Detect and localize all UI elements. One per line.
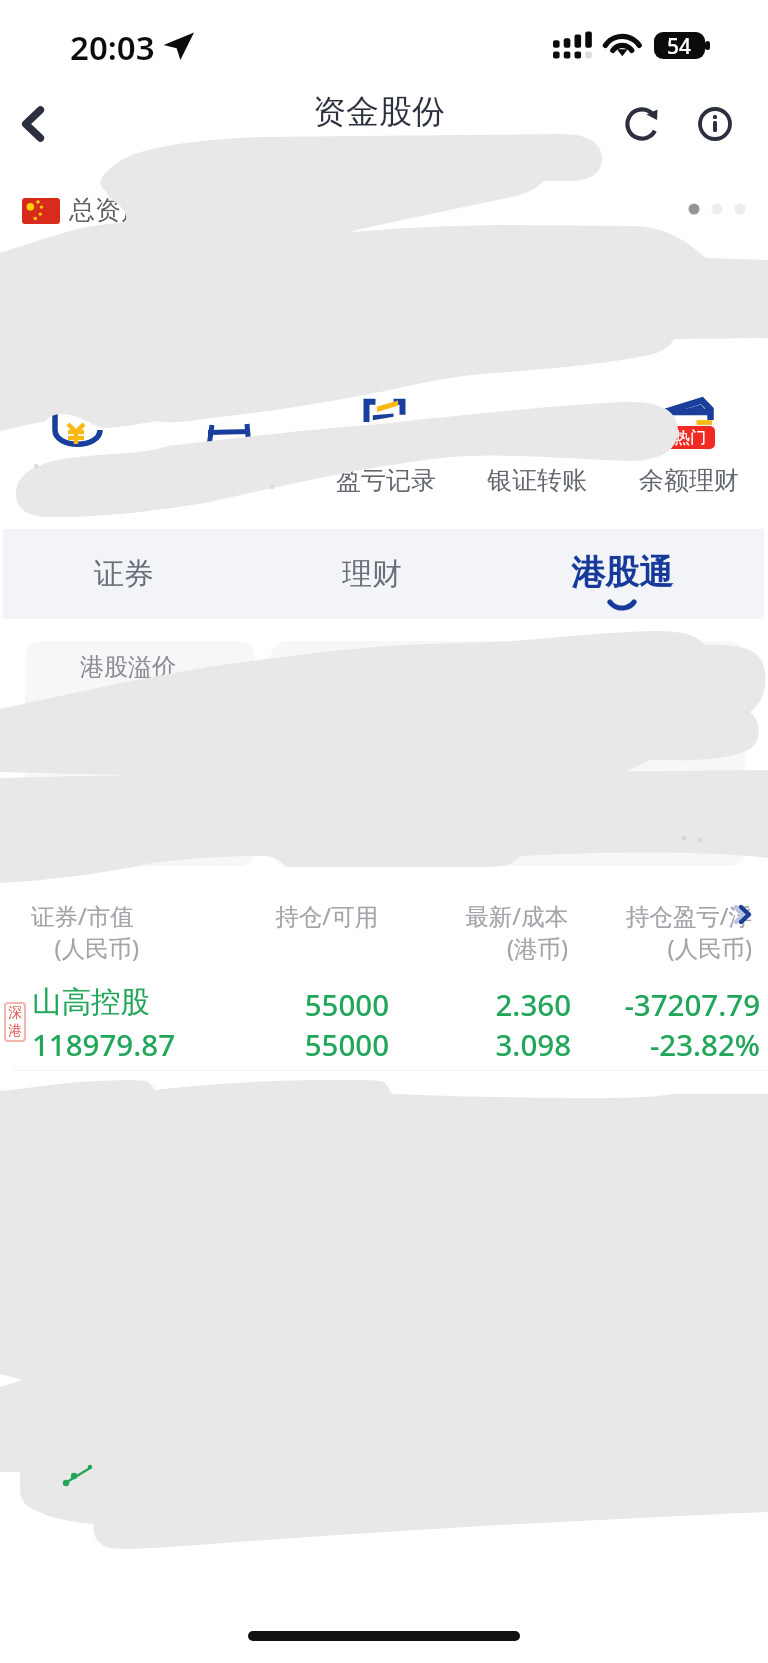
staticText: 港 bbox=[8, 1022, 22, 1040]
staticText: 20:03 bbox=[70, 25, 155, 70]
button[interactable]: Back bbox=[6, 96, 62, 152]
staticText: 热门 bbox=[674, 428, 706, 448]
staticText: 最新/成本 bbox=[0, 900, 568, 932]
staticText: 54 bbox=[667, 32, 692, 59]
staticText: 深 bbox=[8, 1004, 22, 1022]
staticText: 证券 bbox=[94, 555, 154, 593]
staticText: 港股通 bbox=[571, 551, 673, 594]
button[interactable]: 银证转账 bbox=[487, 465, 587, 496]
staticText: 总资产 bbox=[69, 194, 147, 227]
staticText: (人民币) bbox=[0, 932, 752, 964]
staticText: 余额理财 bbox=[639, 465, 739, 496]
staticText: (人民币) bbox=[0, 932, 139, 964]
staticText: 持仓/可用 bbox=[0, 900, 378, 932]
staticText: 持仓盈亏/浮 bbox=[0, 900, 752, 932]
staticText: 理财 bbox=[342, 555, 402, 593]
staticText: 银证转账 bbox=[487, 465, 587, 496]
staticText: 118979.87 bbox=[32, 1024, 176, 1064]
button[interactable]: 理财 bbox=[276, 529, 468, 619]
staticText: 3.098 bbox=[0, 1024, 571, 1064]
button[interactable]: Refresh bbox=[616, 98, 668, 150]
staticText: 55000 bbox=[0, 984, 389, 1024]
staticText: 盈亏记录 bbox=[336, 465, 436, 496]
staticText: 证券/市值 bbox=[31, 900, 134, 932]
button[interactable]: 港股通 bbox=[526, 527, 718, 617]
staticText: -37207.79 bbox=[0, 984, 760, 1024]
button[interactable]: Info bbox=[689, 98, 741, 150]
button[interactable]: 余额理财 bbox=[639, 465, 739, 496]
button[interactable]: 深 bbox=[0, 975, 768, 1069]
staticText: 山高控股 bbox=[32, 984, 150, 1021]
staticText: -23.82% bbox=[0, 1024, 760, 1064]
staticText: (港币) bbox=[0, 932, 568, 964]
button[interactable]: 证券 bbox=[28, 529, 220, 619]
staticText: 2.360 bbox=[0, 984, 571, 1024]
staticText: 资金股份 bbox=[313, 91, 445, 133]
staticText: 55000 bbox=[0, 1024, 389, 1064]
staticText: 港股溢价 bbox=[80, 652, 176, 682]
button[interactable]: 盈亏记录 bbox=[336, 465, 436, 496]
